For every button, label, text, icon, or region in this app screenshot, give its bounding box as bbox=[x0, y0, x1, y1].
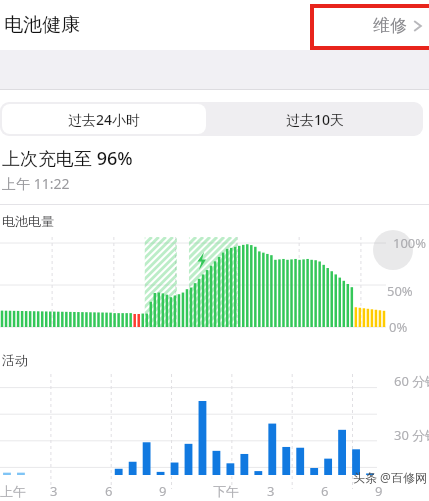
button[interactable]: 过去24小时 bbox=[2, 104, 206, 134]
staticText: 0% bbox=[389, 318, 408, 336]
staticText: 9 bbox=[375, 482, 383, 500]
staticText: 头条 @百修网 bbox=[353, 469, 427, 485]
staticText: 上午 11:22 bbox=[2, 174, 70, 193]
staticText: 过去10天 bbox=[286, 110, 345, 129]
staticText: 下午 bbox=[213, 483, 239, 499]
staticText: 过去24小时 bbox=[68, 110, 141, 129]
button[interactable]: 维修 bbox=[373, 15, 423, 36]
staticText: 活动 bbox=[2, 352, 28, 368]
staticText: 上次充电至 96% bbox=[2, 146, 133, 171]
button[interactable]: 过去10天 bbox=[208, 102, 423, 136]
staticText: 电池健康 bbox=[4, 13, 80, 37]
staticText: 6 bbox=[105, 482, 113, 500]
staticText: 60 分钟 bbox=[394, 372, 429, 390]
staticText: 100% bbox=[393, 234, 427, 252]
staticText: 50% bbox=[387, 282, 413, 300]
staticText: 上午 bbox=[0, 483, 26, 499]
staticText: 维修 bbox=[373, 15, 407, 36]
staticText: 3 bbox=[267, 482, 275, 500]
staticText: 3 bbox=[50, 482, 58, 500]
staticText: 30 分钟 bbox=[394, 426, 429, 444]
staticText: 电池电量 bbox=[2, 213, 54, 229]
staticText: 6 bbox=[321, 482, 329, 500]
staticText: 9 bbox=[159, 482, 167, 500]
